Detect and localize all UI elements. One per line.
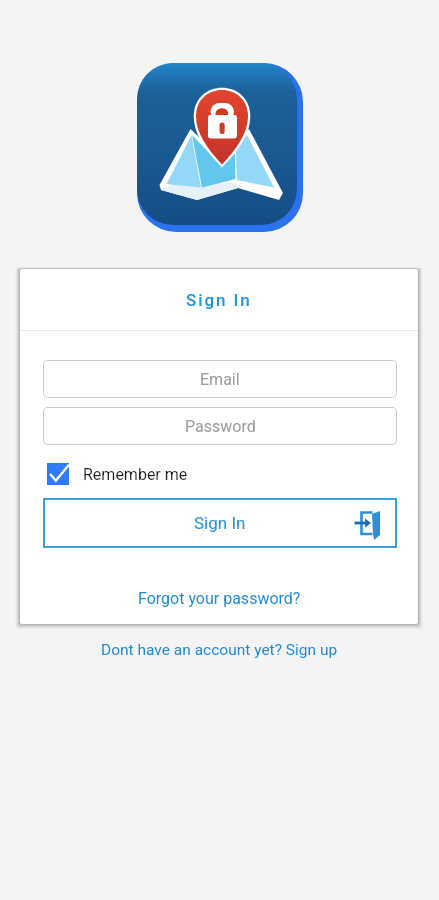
staticText: Email [200, 370, 240, 389]
other: Sign in [354, 510, 381, 537]
button[interactable]: Remember me [44, 460, 188, 488]
button[interactable]: Sign In [43, 498, 397, 548]
staticText: Sign In [186, 290, 252, 310]
staticText: Sign In [194, 513, 246, 533]
button[interactable]: Email [43, 360, 397, 398]
button[interactable]: Dont have an account yet? Sign up [101, 641, 338, 659]
button[interactable]: Password [43, 407, 397, 445]
staticText: Remember me [83, 465, 188, 484]
button[interactable]: Sign In [20, 269, 418, 331]
button[interactable]: Forgot your password? [138, 589, 301, 608]
staticText: Password [185, 417, 256, 436]
